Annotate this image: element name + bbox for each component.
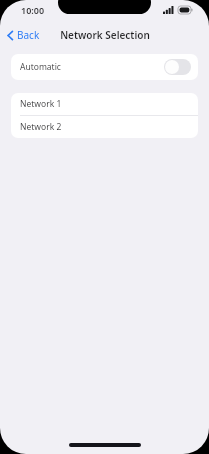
staticText: Automatic bbox=[20, 61, 61, 73]
button[interactable]: Back bbox=[0, 24, 48, 46]
button[interactable]: Network 2 bbox=[11, 116, 198, 138]
button[interactable]: Automatic network selection toggle bbox=[164, 59, 191, 75]
staticText: Network 1 bbox=[20, 98, 62, 110]
staticText: Back bbox=[17, 28, 40, 42]
staticText: Network Selection bbox=[60, 28, 150, 42]
staticText: Network 2 bbox=[20, 121, 62, 133]
staticText: 10:00 bbox=[21, 4, 45, 16]
button[interactable]: Automatic bbox=[11, 54, 198, 80]
button[interactable]: Network 1 bbox=[11, 93, 198, 115]
